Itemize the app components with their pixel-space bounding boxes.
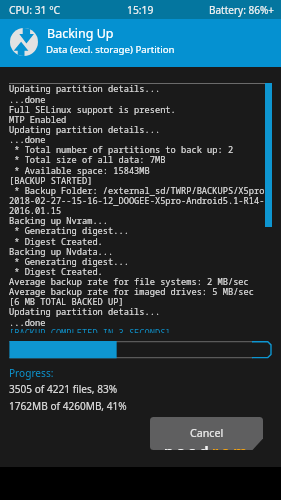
staticText: Progress: (9, 366, 54, 380)
staticText: * Generating digest... (9, 256, 129, 268)
staticText: * Digest Created. (9, 236, 103, 248)
staticText: CPU: 31 °C (9, 3, 61, 17)
staticText: Full SELinux support is present. (9, 104, 176, 116)
staticText: 3505 of 4221 files, 83% (9, 382, 118, 396)
staticText: 2018-02-27--15-16-12_DOOGEE-X5pro-Androi… (9, 195, 265, 207)
button[interactable]: Cancel (150, 417, 263, 450)
staticText: Backing up Nvdata... (9, 246, 114, 258)
staticText: [BACKUP STARTED] (9, 175, 93, 187)
staticText: * Digest Created. (9, 266, 103, 278)
staticText: Data (excl. storage) Partition (46, 43, 175, 56)
staticText: ...done (9, 94, 46, 106)
staticText: Average backup rate for imaged drives: 5… (9, 286, 254, 298)
staticText: ...done (9, 317, 46, 329)
staticText: * Total size of all data: 7MB (9, 154, 166, 166)
staticText: Updating partition details... (9, 124, 161, 136)
staticText: 1762MB of 4260MB, 41% (9, 399, 127, 413)
staticText: Cancel (190, 426, 224, 441)
staticText: need (164, 442, 212, 450)
staticText: Updating partition details... (9, 83, 161, 95)
staticText: * Available space: 15843MB (9, 165, 150, 177)
staticText: Updating partition details... (9, 306, 161, 318)
staticText: [BACKUP COMPLETED IN 3 SECONDS] (9, 327, 171, 333)
staticText: ...done (9, 134, 46, 146)
staticText: rom (212, 442, 251, 450)
staticText: * Total number of partitions to back up:… (9, 144, 234, 156)
staticText: Backing up Nvram... (9, 215, 109, 227)
staticText: [6 MB TOTAL BACKED UP] (9, 296, 124, 308)
staticText: MTP Enabled (9, 114, 67, 126)
staticText: Average backup rate for file systems: 2 … (9, 276, 249, 288)
staticText: Backing Up (47, 25, 114, 42)
staticText: 15:19 (127, 3, 154, 17)
staticText: * Generating digest... (9, 225, 129, 237)
staticText: * Backup Folder: /external_sd/TWRP/BACKU… (9, 185, 270, 197)
staticText: 2016.01.15 (9, 205, 62, 217)
staticText: Battery: 86%+ (209, 3, 274, 17)
